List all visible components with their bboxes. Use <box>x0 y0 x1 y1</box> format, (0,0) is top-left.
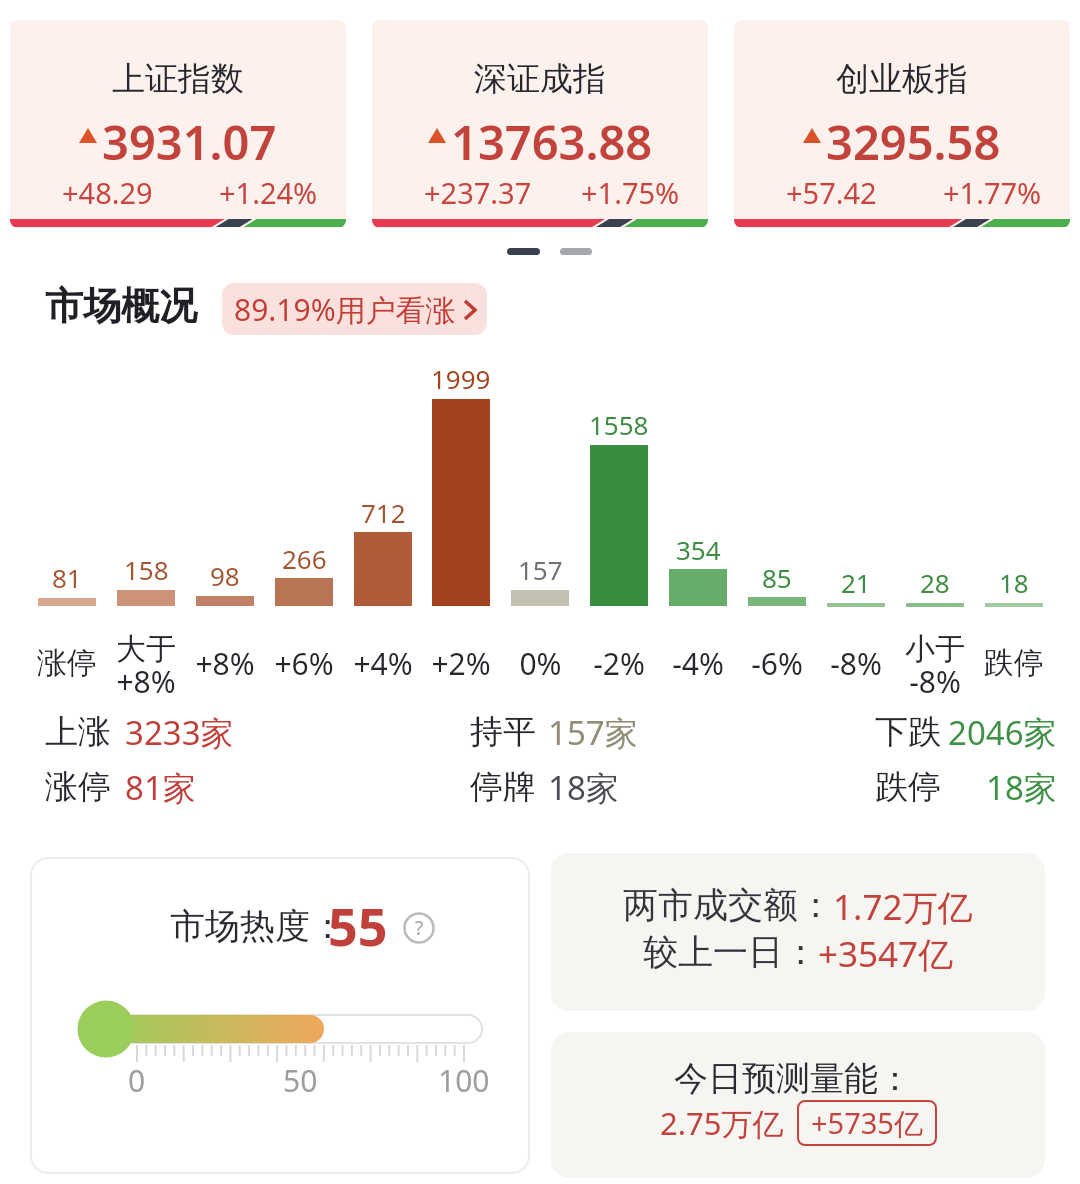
staticText: 18 <box>999 565 1029 600</box>
staticText: 50 <box>283 1060 318 1101</box>
staticText: 2046家 <box>948 710 1057 755</box>
staticText: 3233家 <box>125 710 234 755</box>
staticText: +4% <box>353 643 413 684</box>
staticText: 21 <box>841 565 871 600</box>
staticText: 158 <box>124 552 169 587</box>
staticText: 深证成指 <box>474 58 606 100</box>
staticText: 100 <box>438 1060 490 1101</box>
staticText: 0% <box>519 643 562 684</box>
staticText: 2.75万亿 <box>660 1102 784 1144</box>
staticText: 157家 <box>548 710 638 755</box>
staticText: 较上一日： <box>643 930 818 974</box>
staticText: +57.42 <box>786 173 877 212</box>
staticText: -2% <box>593 643 645 684</box>
staticText: 13763.88 <box>451 110 653 160</box>
staticText: 81 <box>52 560 82 595</box>
staticText: 0 <box>128 1060 146 1101</box>
staticText: -8% <box>830 643 882 684</box>
staticText: +3547亿 <box>818 930 954 978</box>
staticText: 3295.58 <box>826 110 1001 160</box>
staticText: +237.37 <box>424 173 532 212</box>
staticText: 18家 <box>548 765 619 810</box>
staticText: 上证指数 <box>112 58 244 100</box>
button[interactable] <box>551 853 1045 1011</box>
staticText: +1.24% <box>219 173 318 212</box>
button[interactable]: ? <box>399 908 439 948</box>
button[interactable]: 上证指数 <box>10 20 346 228</box>
staticText: +8% <box>195 643 255 684</box>
staticText: 266 <box>282 541 327 576</box>
button[interactable]: 创业板指 <box>734 20 1070 228</box>
staticText: -6% <box>751 643 803 684</box>
staticText: 3931.07 <box>102 110 277 160</box>
staticText: 两市成交额： <box>623 883 833 927</box>
button[interactable] <box>30 857 530 1174</box>
staticText: +1.77% <box>943 173 1042 212</box>
staticText: 354 <box>676 532 721 567</box>
staticText: +48.29 <box>62 173 153 212</box>
staticText: 市场热度： <box>170 904 345 948</box>
staticText: +5735亿 <box>811 1103 923 1143</box>
staticText: 持平 <box>470 711 536 753</box>
staticText: 涨停 <box>45 766 111 808</box>
staticText: 89.19%用户看涨 <box>234 289 456 330</box>
staticText: -4% <box>672 643 724 684</box>
staticText: 1558 <box>589 407 649 442</box>
button[interactable] <box>551 1032 1045 1178</box>
staticText: 85 <box>762 560 792 595</box>
staticText: 98 <box>210 558 240 593</box>
staticText: 712 <box>361 495 406 530</box>
staticText: 涨停 <box>37 644 97 682</box>
staticText: 1.72万亿 <box>833 883 973 931</box>
staticText: 停牌 <box>470 766 536 808</box>
staticText: 市场概况 <box>45 282 197 330</box>
staticText: 大于 +8% <box>116 630 176 696</box>
staticText: 下跌 <box>875 711 941 753</box>
staticText: 157 <box>518 552 563 587</box>
staticText: 18家 <box>986 765 1057 810</box>
button[interactable]: 89.19%用户看涨 <box>222 283 487 335</box>
staticText: 跌停 <box>875 766 941 808</box>
staticText: +1.75% <box>581 173 680 212</box>
staticText: ? <box>415 915 424 941</box>
staticText: 今日预测量能： <box>674 1057 912 1100</box>
staticText: 28 <box>920 565 950 600</box>
staticText: 55 <box>328 890 388 961</box>
staticText: 1999 <box>431 361 491 396</box>
staticText: 小于 -8% <box>905 630 965 696</box>
staticText: +6% <box>274 643 334 684</box>
staticText: 81家 <box>125 765 196 810</box>
staticText: 跌停 <box>984 644 1044 682</box>
staticText: 创业板指 <box>836 58 968 100</box>
staticText: +2% <box>431 643 491 684</box>
button[interactable]: 深证成指 <box>372 20 708 228</box>
staticText: 上涨 <box>45 711 111 753</box>
